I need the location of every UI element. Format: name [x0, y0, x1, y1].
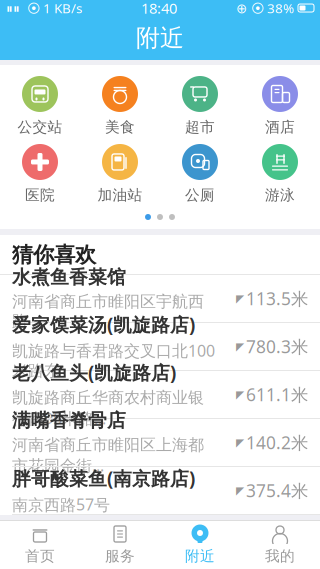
button[interactable]: 美食: [80, 77, 160, 135]
staticText: 猜你喜欢: [12, 242, 96, 268]
staticText: 凯旋路与香君路交叉口北100米路东: [12, 340, 215, 381]
button[interactable]: 老八鱼头(凯旋路店): [0, 371, 320, 419]
button[interactable]: 水煮鱼香菜馆: [0, 275, 320, 323]
staticText: 南京西路57号: [12, 494, 110, 515]
staticText: 首页: [25, 547, 55, 565]
button[interactable]: 服务: [80, 520, 160, 569]
button[interactable]: 满嘴香脊骨店: [0, 419, 320, 467]
staticText: ◤: [236, 292, 244, 304]
staticText: 113.5米: [246, 287, 308, 310]
staticText: 水煮鱼香菜馆: [12, 266, 126, 289]
staticText: 河南省商丘市睢阳区上海都市花园金街...: [12, 435, 204, 476]
button[interactable]: 爱家馍菜汤(凯旋路店): [0, 323, 320, 371]
staticText: 加油站: [97, 186, 142, 204]
button[interactable]: 公厕: [160, 145, 240, 203]
staticText: ◤: [236, 484, 244, 496]
staticText: ◤: [236, 388, 244, 400]
button[interactable]: 公交站: [0, 77, 80, 135]
staticText: 爱家馍菜汤(凯旋路店): [12, 312, 195, 337]
staticText: 老八鱼头(凯旋路店): [12, 360, 176, 385]
button[interactable]: 医院: [0, 145, 80, 203]
staticText: ⏸⏸ ⦿ 1 KB/s: [6, 0, 82, 17]
button[interactable]: 附近: [160, 520, 240, 569]
staticText: 游泳: [265, 186, 295, 204]
staticText: 375.4米: [246, 479, 308, 502]
staticText: ⊕ ⦿ 38%: [236, 0, 294, 17]
button[interactable]: 我的: [240, 520, 320, 569]
staticText: 酒店: [265, 118, 295, 136]
button[interactable]: 超市: [160, 77, 240, 135]
staticText: 18:40: [141, 0, 177, 18]
staticText: 780.3米: [246, 335, 308, 358]
button[interactable]: 胖哥酸菜鱼(南京路店): [0, 467, 320, 515]
button[interactable]: 加油站: [80, 145, 160, 203]
staticText: 医院: [25, 186, 55, 204]
staticText: 611.1米: [246, 383, 308, 406]
staticText: 公厕: [185, 186, 215, 204]
staticText: 公交站: [17, 118, 62, 136]
staticText: 超市: [185, 118, 215, 136]
staticText: 附近: [185, 547, 215, 565]
staticText: 我的: [265, 547, 295, 565]
staticText: ◤: [236, 436, 244, 448]
button[interactable]: 游泳: [240, 145, 320, 203]
button[interactable]: 酒店: [240, 77, 320, 135]
staticText: 胖哥酸菜鱼(南京路店): [12, 466, 195, 491]
button[interactable]: 首页: [0, 520, 80, 569]
staticText: 满嘴香脊骨店: [12, 409, 126, 432]
staticText: 凯旋路商丘华商农村商业银行南95米路...: [12, 388, 204, 429]
staticText: 河南省商丘市睢阳区宇航西路: [12, 292, 204, 331]
staticText: 服务: [105, 547, 135, 565]
staticText: 附近: [136, 23, 184, 53]
staticText: ◤: [236, 340, 244, 352]
staticText: 美食: [105, 118, 135, 136]
staticText: 140.2米: [246, 431, 308, 454]
